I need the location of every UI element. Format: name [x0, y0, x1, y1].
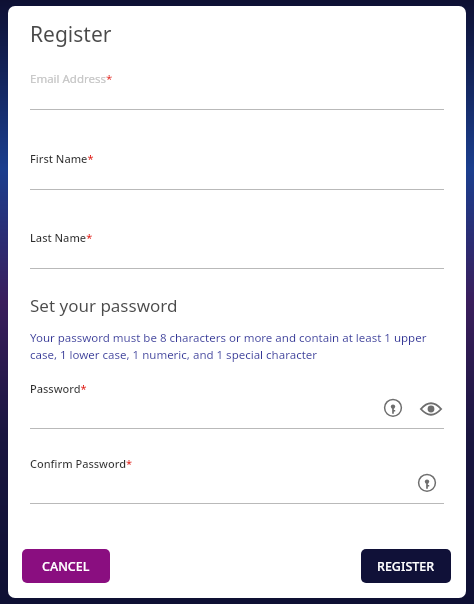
- staticText: Confirm Password*: [30, 456, 132, 471]
- staticText: Password*: [30, 381, 87, 396]
- staticText: Register: [30, 20, 112, 49]
- button[interactable]: REGISTER: [361, 549, 451, 583]
- button[interactable]: Show password: [418, 396, 444, 422]
- staticText: CANCEL: [42, 558, 90, 575]
- button[interactable]: CANCEL: [22, 549, 110, 583]
- button[interactable]: Autofill password: [380, 396, 406, 422]
- button[interactable]: Autofill password: [414, 471, 440, 497]
- staticText: Your password must be 8 characters or mo…: [30, 330, 444, 363]
- staticText: Email Address*: [30, 71, 113, 87]
- staticText: Last Name*: [30, 230, 93, 245]
- staticText: REGISTER: [377, 558, 435, 575]
- staticText: First Name*: [30, 151, 94, 166]
- staticText: Set your password: [30, 294, 178, 317]
